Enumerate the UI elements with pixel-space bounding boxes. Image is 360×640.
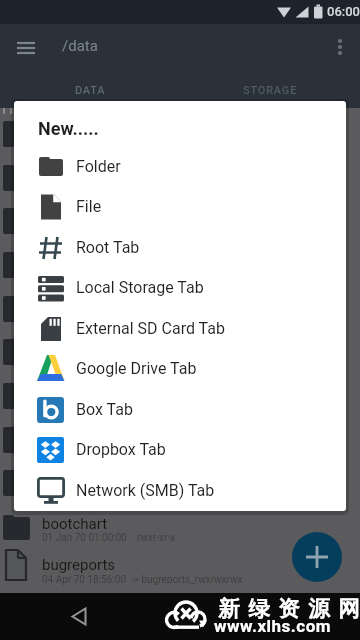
button[interactable]: Google Drive Tab (14, 349, 346, 389)
staticText: STORAGE (243, 84, 298, 97)
button[interactable] (292, 532, 342, 582)
staticText: 01 Jan 70 01:00:00 rwxr-xr-x (42, 532, 176, 544)
staticText: Network (SMB) Tab (76, 481, 215, 500)
button[interactable] (0, 546, 360, 590)
button[interactable]: Network (SMB) Tab (14, 471, 346, 511)
button[interactable]: Box Tab (14, 390, 346, 430)
button[interactable] (8, 34, 44, 70)
staticText: www.xlhs.com (214, 616, 331, 636)
button[interactable]: Root Tab (14, 228, 346, 268)
staticText: Google Drive Tab (76, 359, 197, 378)
staticText: Box Tab (76, 400, 133, 419)
staticText: bugreports (42, 556, 116, 574)
button[interactable]: STORAGE (180, 80, 360, 100)
button[interactable] (0, 508, 360, 552)
staticText: /data (62, 37, 98, 55)
button[interactable]: Dropbox Tab (14, 430, 346, 470)
staticText: External SD Card Tab (76, 319, 225, 338)
staticText: DATA (75, 84, 106, 97)
button[interactable]: File (14, 187, 346, 227)
staticText: 04 Apr 70 18:56:00 -> bugreports_rwxrwxr… (42, 574, 243, 586)
button[interactable] (60, 597, 98, 635)
button[interactable]: DATA (0, 80, 180, 100)
staticText: File (76, 197, 102, 216)
button[interactable]: Local Storage Tab (14, 268, 346, 308)
staticText: New..... (38, 118, 99, 139)
staticText: Folder (76, 157, 121, 176)
staticText: 06:00 (327, 4, 360, 19)
button[interactable] (328, 28, 356, 68)
staticText: Dropbox Tab (76, 440, 166, 459)
staticText: bootchart (42, 515, 108, 533)
staticText: 新绿资源网 (214, 595, 360, 622)
button[interactable]: Folder (14, 147, 346, 187)
staticText: Root Tab (76, 238, 140, 257)
button[interactable]: External SD Card Tab (14, 309, 346, 349)
staticText: 11 (0, 102, 15, 117)
staticText: Local Storage Tab (76, 278, 204, 297)
